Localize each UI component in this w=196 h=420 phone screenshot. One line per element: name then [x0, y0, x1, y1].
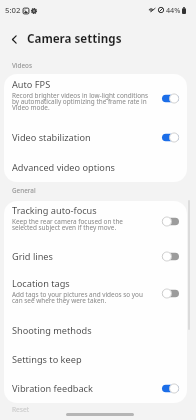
staticText: Grid lines: [12, 250, 53, 263]
staticText: Settings to keep: [12, 353, 82, 366]
button[interactable]: Advanced video options: [4, 152, 187, 182]
staticText: Video stabilization: [12, 131, 91, 144]
button[interactable]: Shooting methods: [4, 315, 187, 345]
button[interactable]: Tracking auto-focus: [4, 201, 187, 241]
button[interactable]: Switch on: [162, 132, 179, 143]
staticText: Videos: [12, 61, 32, 70]
staticText: Auto FPS: [12, 78, 51, 91]
button[interactable]: Settings to keep: [4, 345, 187, 374]
button[interactable]: Vibration feedback: [4, 374, 187, 403]
button[interactable]: Grid lines: [4, 241, 187, 271]
staticText: Vibration feedback: [12, 382, 93, 395]
staticText: General: [12, 186, 36, 195]
button[interactable]: Switch on: [162, 383, 179, 394]
staticText: 5:02: [5, 5, 21, 16]
staticText: Camera settings: [27, 31, 122, 47]
button[interactable]: Navigate up: [6, 31, 22, 47]
button[interactable]: Video stabilization: [4, 122, 187, 152]
button[interactable]: Location tags: [4, 271, 187, 315]
button[interactable]: Switch on: [162, 93, 179, 104]
staticText: Keep the rear camera focused on the sele…: [12, 217, 123, 231]
button[interactable]: Auto FPS: [4, 74, 187, 122]
staticText: Location tags: [12, 277, 70, 290]
staticText: Shooting methods: [12, 324, 92, 337]
button[interactable]: Switch off: [162, 288, 179, 299]
staticText: Record brighter videos in low-light cond…: [12, 91, 149, 111]
staticText: Reset: [12, 405, 30, 414]
staticText: Advanced video options: [12, 161, 116, 174]
staticText: Add tags to your pictures and videos so …: [12, 290, 143, 304]
staticText: 44%: [166, 5, 181, 15]
staticText: Tracking auto-focus: [12, 204, 97, 217]
button[interactable]: Switch off: [162, 251, 179, 262]
button[interactable]: Switch off: [162, 216, 179, 227]
